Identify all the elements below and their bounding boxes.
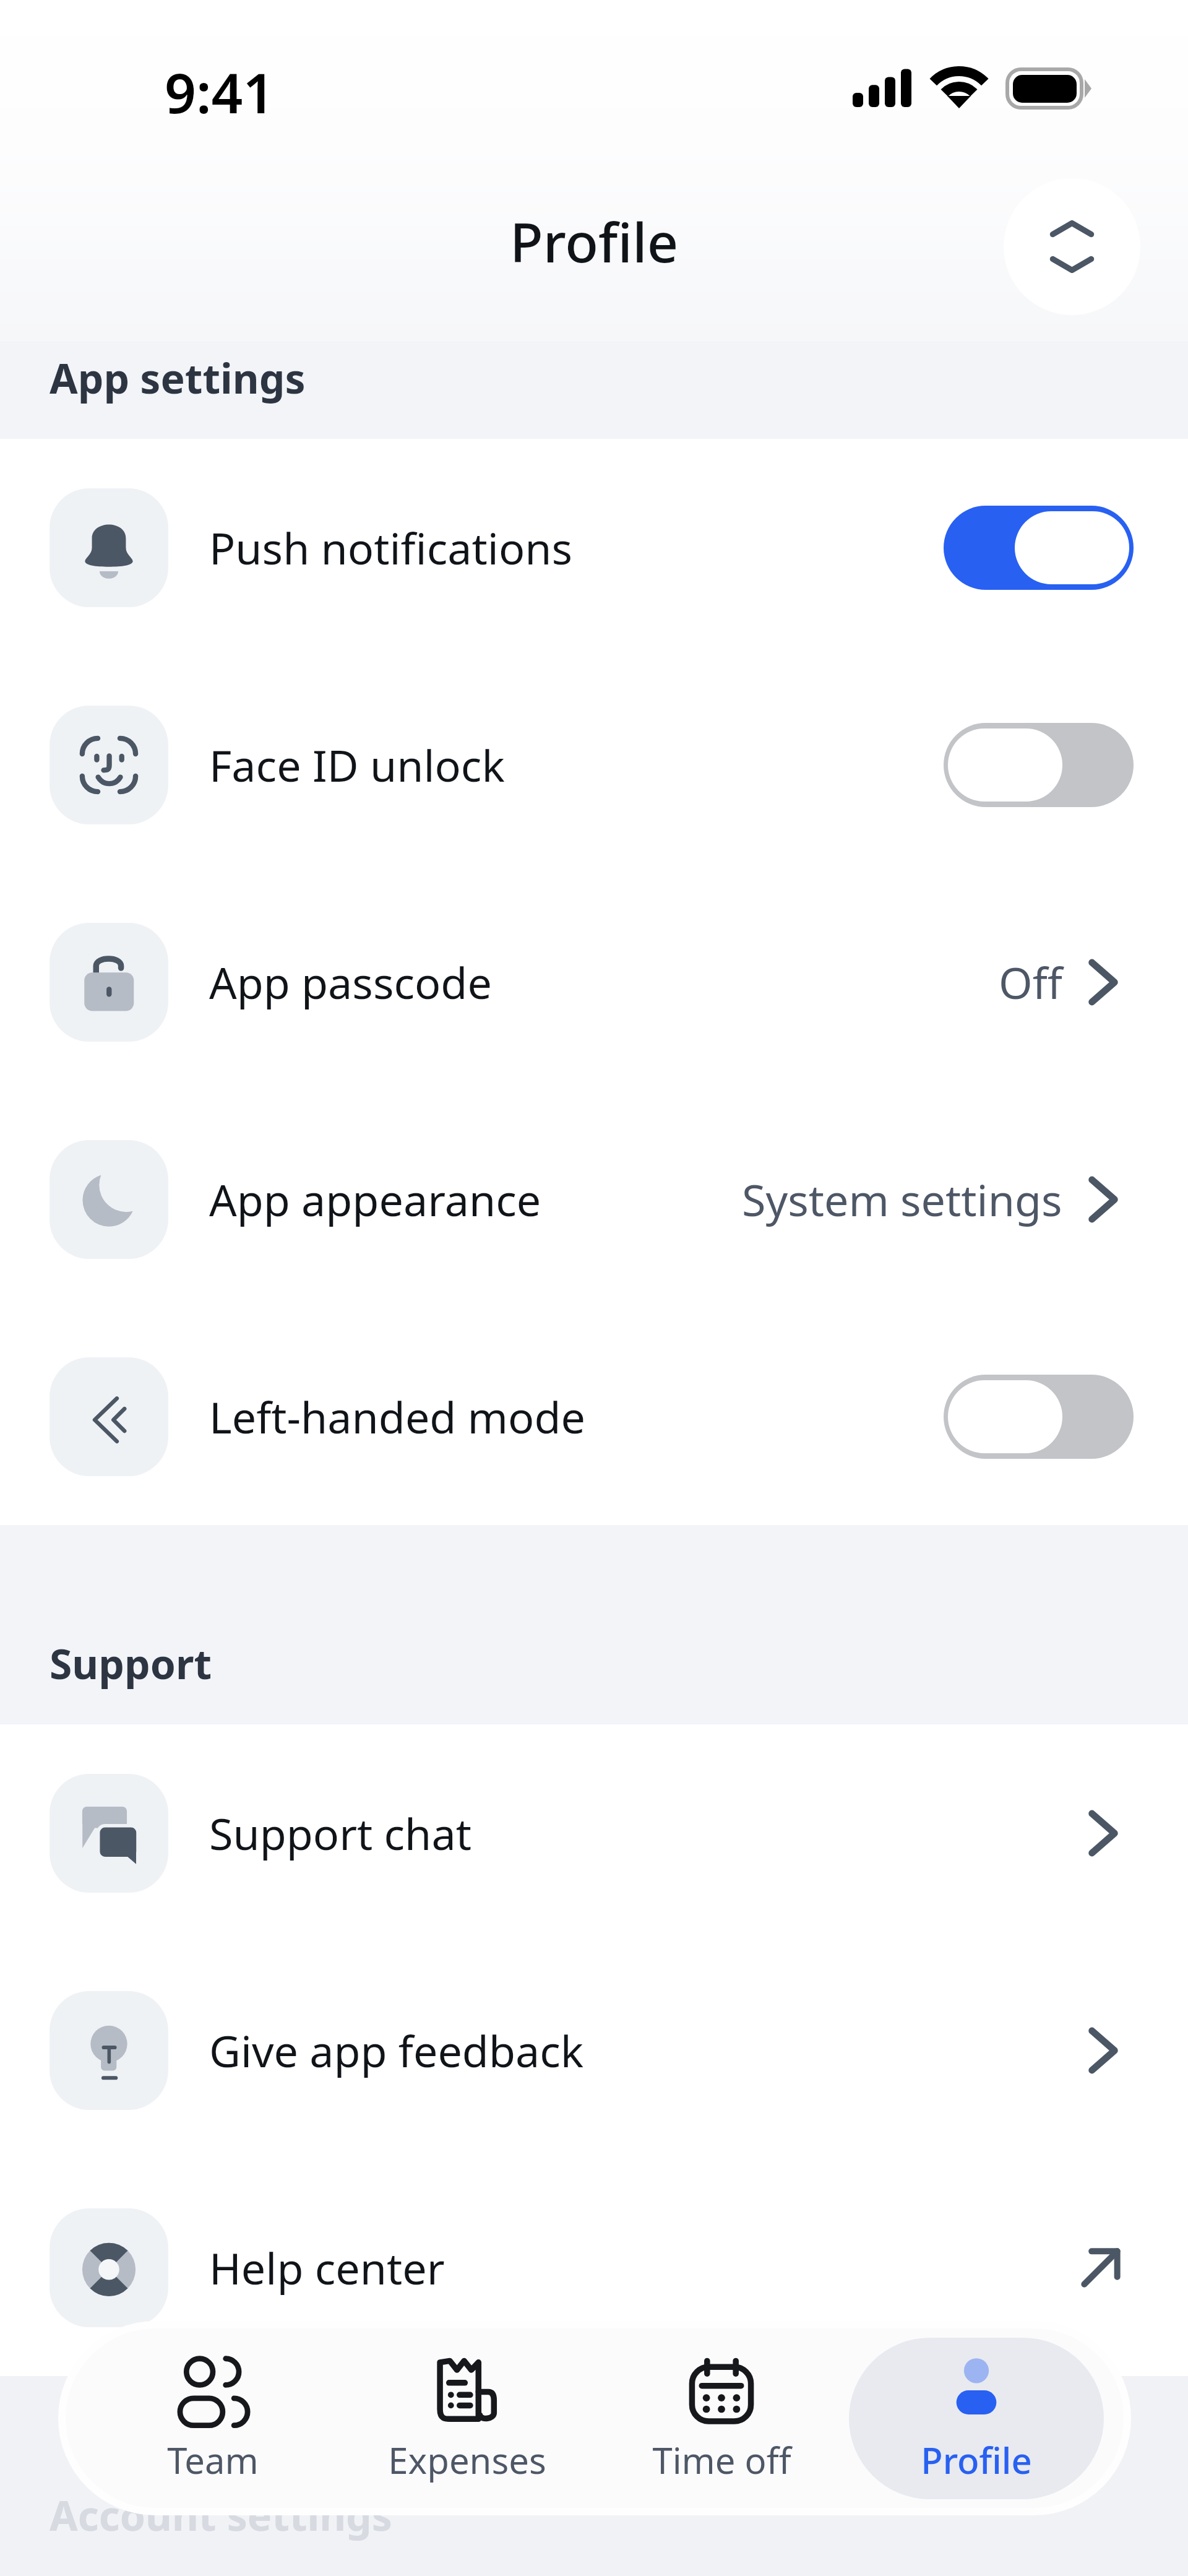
button[interactable]: Switch account: [1004, 178, 1140, 315]
button[interactable]: Help center: [0, 2159, 1188, 2376]
staticText: Team: [167, 2436, 259, 2484]
button[interactable]: Time off: [594, 2338, 849, 2499]
button[interactable]: Profile: [849, 2338, 1104, 2499]
staticText: Give app feedback: [209, 2021, 584, 2080]
staticText: Profile: [921, 2436, 1032, 2484]
staticText: Left-handed mode: [209, 1387, 585, 1446]
staticText: Face ID unlock: [209, 735, 505, 794]
staticText: Profile: [510, 204, 679, 279]
staticText: Support chat: [209, 1804, 471, 1862]
staticText: Off: [999, 953, 1062, 1011]
button[interactable]: Support chat: [0, 1724, 1188, 1942]
staticText: Support: [49, 1635, 212, 1691]
button[interactable]: Off: [944, 1375, 1134, 1459]
staticText: Account settings: [49, 2487, 392, 2543]
staticText: System settings: [742, 1170, 1062, 1229]
staticText: Help center: [209, 2238, 445, 2297]
button[interactable]: App appearance: [0, 1091, 1188, 1308]
button[interactable]: Give app feedback: [0, 1942, 1188, 2159]
staticText: Time off: [652, 2436, 791, 2484]
staticText: Push notifications: [209, 518, 573, 577]
staticText: Expenses: [388, 2436, 546, 2484]
button[interactable]: On: [944, 506, 1134, 590]
button[interactable]: Left-handed mode: [0, 1308, 1188, 1525]
button[interactable]: Expenses: [340, 2338, 594, 2499]
button[interactable]: Off: [944, 723, 1134, 807]
button[interactable]: Face ID unlock: [0, 656, 1188, 873]
staticText: 9:41: [165, 54, 275, 129]
button[interactable]: App passcode: [0, 873, 1188, 1091]
button[interactable]: Push notifications: [0, 439, 1188, 656]
staticText: App passcode: [209, 953, 492, 1011]
button[interactable]: Team: [85, 2338, 340, 2499]
staticText: App settings: [49, 350, 306, 405]
staticText: App appearance: [209, 1170, 541, 1229]
